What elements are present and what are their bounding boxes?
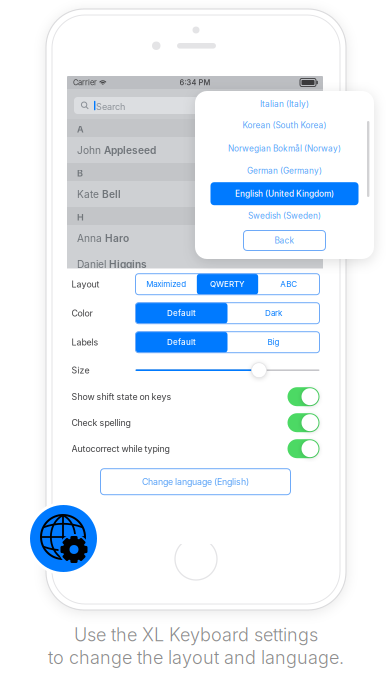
staticText: John bbox=[77, 144, 104, 156]
button[interactable]: Change language (English) bbox=[71, 462, 319, 502]
button[interactable]: Daniel bbox=[67, 251, 323, 277]
staticText: Anna bbox=[77, 232, 105, 244]
staticText: Kate bbox=[77, 188, 102, 200]
button[interactable]: Toggle bbox=[287, 439, 319, 458]
button[interactable]: Back bbox=[195, 230, 374, 250]
staticText: Higgins bbox=[109, 258, 147, 270]
button[interactable]: Italian (Italy) bbox=[195, 92, 374, 115]
staticText: Labels bbox=[71, 337, 98, 347]
staticText: Korean (South Korea) bbox=[242, 120, 326, 130]
button[interactable]: Kate bbox=[67, 181, 323, 207]
staticText: Carrier bbox=[73, 78, 97, 87]
staticText: Swedish (Sweden) bbox=[248, 211, 321, 221]
staticText: Layout bbox=[71, 279, 99, 289]
staticText: Back bbox=[274, 235, 294, 245]
staticText: Search bbox=[96, 101, 125, 112]
button[interactable]: ABC bbox=[258, 274, 319, 295]
staticText: German (Germany) bbox=[247, 166, 322, 176]
button[interactable]: Anna bbox=[67, 225, 323, 251]
staticText: English (United Kingdom) bbox=[235, 189, 334, 199]
button[interactable]: English (United Kingdom) bbox=[195, 182, 374, 205]
staticText: Daniel bbox=[77, 258, 109, 270]
button[interactable]: QWERTY bbox=[197, 274, 258, 295]
staticText: Autocorrect while typing bbox=[71, 443, 169, 454]
button[interactable]: Toggle bbox=[287, 413, 319, 432]
button[interactable]: Dark bbox=[227, 303, 319, 324]
staticText: Show shift state on keys bbox=[71, 391, 171, 402]
button[interactable]: John bbox=[67, 137, 323, 163]
staticText: Dark bbox=[265, 308, 282, 318]
staticText: Change language (English) bbox=[142, 476, 249, 487]
staticText: Norwegian Bokmål (Norway) bbox=[228, 143, 341, 153]
staticText: Check spelling bbox=[71, 417, 130, 428]
button[interactable]: German (Germany) bbox=[195, 159, 374, 182]
button[interactable]: Default bbox=[135, 303, 227, 324]
staticText: ABC bbox=[280, 279, 297, 289]
staticText: QWERTY bbox=[210, 279, 245, 289]
staticText: Bell bbox=[102, 188, 121, 200]
staticText: Color bbox=[71, 308, 92, 318]
button[interactable]: Toggle bbox=[287, 387, 319, 406]
staticText: Appleseed bbox=[104, 144, 156, 156]
staticText: Default bbox=[167, 308, 196, 318]
staticText: to change the layout and language. bbox=[48, 646, 344, 668]
button[interactable]: Keyboard language settings bbox=[27, 502, 100, 575]
staticText: Big bbox=[267, 337, 279, 347]
button[interactable]: Norwegian Bokmål (Norway) bbox=[195, 137, 374, 160]
button[interactable]: Swedish (Sweden) bbox=[195, 204, 374, 227]
staticText: Haro bbox=[105, 232, 129, 244]
staticText: Maximized bbox=[146, 279, 186, 289]
button[interactable]: Default bbox=[135, 332, 227, 353]
staticText: 6:34 PM bbox=[179, 78, 210, 87]
staticText: H bbox=[77, 212, 84, 223]
staticText: Default bbox=[167, 337, 196, 347]
staticText: B bbox=[77, 168, 83, 179]
staticText: Size bbox=[71, 365, 89, 375]
button[interactable]: Korean (South Korea) bbox=[195, 114, 374, 137]
staticText: Italian (Italy) bbox=[260, 99, 309, 109]
staticText: Use the XL Keyboard settings bbox=[74, 624, 318, 645]
button[interactable]: Maximized bbox=[135, 274, 197, 295]
staticText: A bbox=[77, 124, 84, 135]
button[interactable]: Big bbox=[227, 332, 319, 353]
